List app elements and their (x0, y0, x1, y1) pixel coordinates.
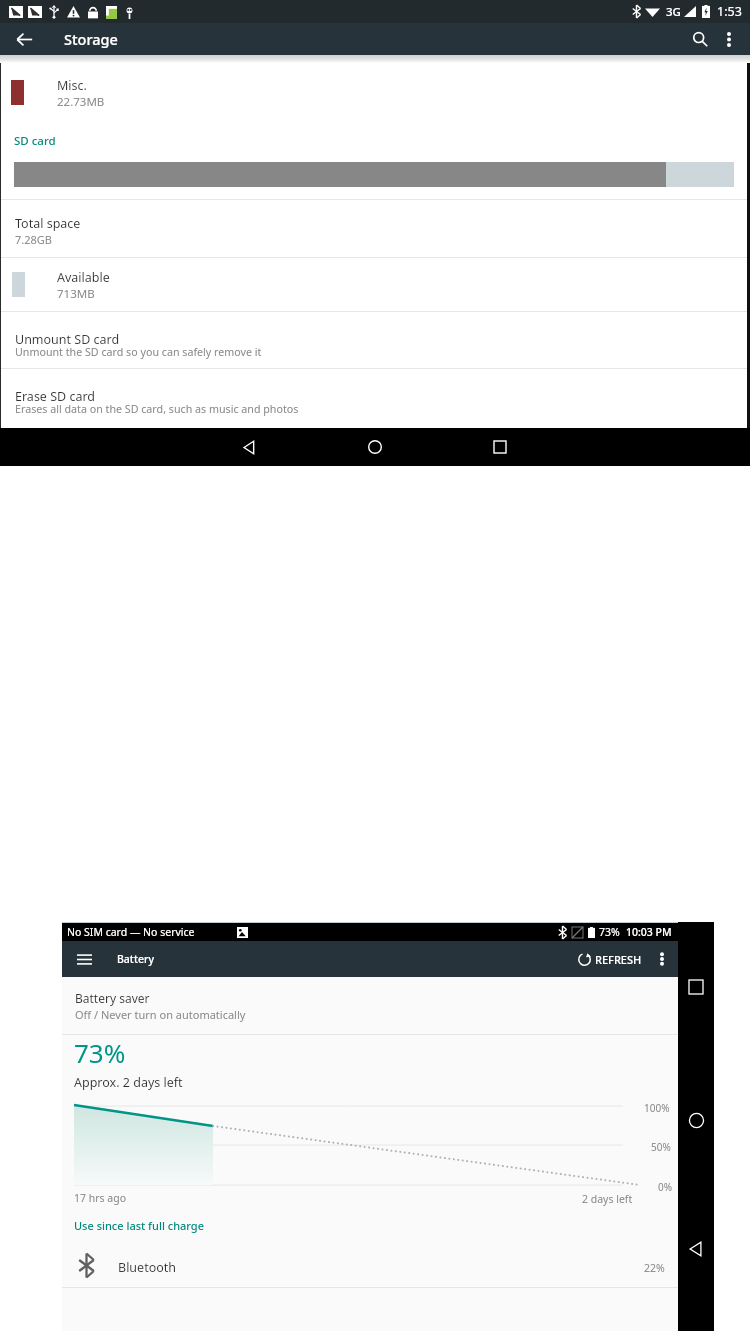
staticText: 713MB (57, 286, 95, 302)
staticText: 17 hrs ago (74, 1191, 127, 1205)
button[interactable]: Use since last full charge (74, 1218, 204, 1233)
staticText: 2 days left (582, 1192, 633, 1206)
staticText: 3G (666, 4, 681, 20)
button[interactable]: More options (714, 23, 744, 55)
button[interactable]: Total space (0, 200, 750, 257)
staticText: 73% (599, 925, 620, 939)
staticText: Total space (15, 215, 81, 232)
staticText: 7.28GB (15, 232, 52, 247)
staticText: SD card (14, 133, 56, 149)
staticText: Bluetooth (118, 1259, 177, 1276)
button[interactable]: Back (0, 23, 48, 55)
staticText: Battery (117, 952, 154, 966)
staticText: Unmount the SD card so you can safely re… (15, 345, 262, 360)
button[interactable]: Available (0, 258, 750, 311)
staticText: 1:53 (717, 3, 742, 20)
staticText: Erase SD card (15, 388, 96, 405)
staticText: Battery saver (75, 990, 150, 1006)
staticText: Storage (64, 29, 118, 49)
staticText: 73% (74, 1035, 126, 1070)
button[interactable]: Misc. (0, 63, 750, 140)
button[interactable]: Unmount SD card (0, 312, 750, 368)
staticText: 0% (658, 1180, 673, 1194)
button[interactable]: Bluetooth (62, 1243, 678, 1287)
staticText: Off / Never turn on automatically (75, 1007, 246, 1022)
button[interactable]: Home (351, 428, 399, 466)
button[interactable]: Back (678, 1231, 714, 1267)
button[interactable]: Home (678, 1102, 714, 1138)
button[interactable]: Erase SD card (0, 369, 750, 428)
button[interactable]: Search (682, 23, 718, 55)
staticText: No SIM card — No service (67, 925, 195, 939)
staticText: Misc. (57, 77, 87, 94)
button[interactable]: Recents (476, 428, 524, 466)
button[interactable]: REFRESH (566, 946, 646, 973)
staticText: Approx. 2 days left (74, 1074, 183, 1091)
staticText: 22% (644, 1261, 665, 1275)
button[interactable]: Back (225, 428, 273, 466)
button[interactable]: More options (646, 941, 678, 977)
button[interactable]: Recents (678, 969, 714, 1005)
staticText: Available (57, 269, 110, 286)
staticText: Unmount SD card (15, 331, 120, 348)
staticText: 100% (644, 1101, 670, 1115)
staticText: 50% (651, 1140, 671, 1154)
button[interactable]: Navigation menu (62, 941, 106, 977)
staticText: Erases all data on the SD card, such as … (15, 402, 299, 417)
staticText: REFRESH (595, 952, 642, 967)
button[interactable] (0, 162, 750, 187)
staticText: 10:03 PM (626, 925, 672, 939)
button[interactable]: Battery saver (62, 977, 678, 1034)
staticText: 22.73MB (57, 94, 105, 110)
